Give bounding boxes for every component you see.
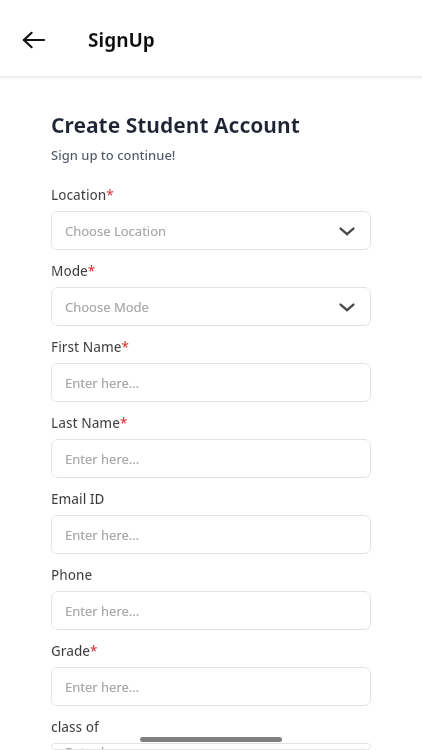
button[interactable]: Enter here... bbox=[51, 743, 371, 750]
button[interactable]: Enter here... bbox=[51, 515, 371, 554]
staticText: class of bbox=[51, 718, 99, 736]
button[interactable]: Enter here... bbox=[51, 667, 371, 706]
other: Open Location dropdown bbox=[337, 221, 357, 241]
staticText: Enter here... bbox=[65, 743, 357, 750]
staticText: Sign up to continue! bbox=[51, 146, 176, 164]
staticText: Enter here... bbox=[65, 602, 357, 620]
staticText: First Name* bbox=[51, 338, 129, 356]
staticText: Last Name* bbox=[51, 414, 128, 432]
button[interactable]: Choose Location bbox=[51, 211, 371, 250]
staticText: Email ID bbox=[51, 490, 105, 508]
other: Open Mode dropdown bbox=[337, 297, 357, 317]
staticText: Enter here... bbox=[65, 678, 357, 696]
button[interactable]: Enter here... bbox=[51, 591, 371, 630]
button[interactable]: Choose Mode bbox=[51, 287, 371, 326]
staticText: Choose Location bbox=[65, 222, 337, 240]
staticText: Location* bbox=[51, 186, 114, 204]
staticText: Choose Mode bbox=[65, 298, 337, 316]
button[interactable]: Enter here... bbox=[51, 439, 371, 478]
staticText: Grade* bbox=[51, 642, 98, 660]
staticText: Create Student Account bbox=[51, 111, 300, 140]
staticText: Enter here... bbox=[65, 526, 357, 544]
button[interactable]: Enter here... bbox=[51, 363, 371, 402]
staticText: Phone bbox=[51, 566, 93, 584]
staticText: Mode* bbox=[51, 262, 96, 280]
staticText: Enter here... bbox=[65, 450, 357, 468]
staticText: SignUp bbox=[88, 27, 155, 53]
staticText: Enter here... bbox=[65, 374, 357, 392]
button[interactable]: Back bbox=[12, 18, 56, 62]
